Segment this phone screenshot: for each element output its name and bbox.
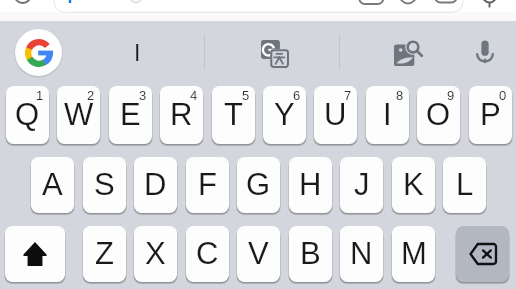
staticText: A (42, 167, 63, 202)
button[interactable]: Z (83, 226, 126, 284)
button[interactable]: Google (15, 29, 62, 76)
staticText: Y (274, 97, 295, 132)
button[interactable]: R (160, 86, 203, 146)
staticText: T (224, 97, 243, 132)
button[interactable]: S (83, 157, 126, 215)
button[interactable]: X (134, 226, 177, 284)
button[interactable]: Y (263, 86, 306, 146)
button[interactable]: D (134, 157, 177, 215)
staticText: P (480, 97, 501, 132)
button[interactable]: O (417, 86, 460, 146)
staticText: G (246, 167, 271, 202)
button[interactable]: B (289, 226, 332, 284)
button[interactable]: V (237, 226, 280, 284)
staticText: N (350, 236, 373, 271)
staticText: O (426, 97, 451, 132)
button[interactable]: L (443, 157, 486, 215)
staticText: I (134, 40, 141, 66)
staticText: J (354, 167, 370, 202)
staticText: Z (95, 236, 114, 271)
staticText: X (145, 236, 166, 271)
button[interactable]: I (366, 86, 409, 146)
button[interactable]: J (340, 157, 383, 215)
staticText: C (196, 236, 219, 271)
staticText: 6 (293, 88, 301, 103)
button[interactable]: I (70, 21, 204, 85)
staticText: 0 (499, 88, 507, 103)
staticText: 5 (242, 88, 250, 103)
staticText: B (300, 236, 321, 271)
button[interactable]: H (289, 157, 332, 215)
staticText: K (403, 167, 424, 202)
button[interactable]: C (186, 226, 229, 284)
staticText: L (456, 167, 474, 202)
button[interactable]: P (469, 86, 512, 146)
staticText: 2 (87, 88, 95, 103)
button[interactable]: F (186, 157, 229, 215)
staticText: V (248, 236, 269, 271)
staticText: M (401, 236, 427, 271)
staticText: 9 (447, 88, 455, 103)
button[interactable]: G (237, 157, 280, 215)
button[interactable]: Image search (374, 21, 440, 85)
staticText: F (198, 167, 217, 202)
staticText: 4 (190, 88, 198, 103)
button[interactable]: U (314, 86, 357, 146)
button[interactable]: T (212, 86, 255, 146)
button[interactable]: N (340, 226, 383, 284)
staticText: H (299, 167, 322, 202)
button[interactable]: M (392, 226, 435, 284)
button[interactable]: A (31, 157, 74, 215)
button[interactable]: K (392, 157, 435, 215)
staticText: Q (15, 97, 40, 132)
button[interactable]: W (57, 86, 100, 146)
staticText: D (144, 167, 167, 202)
staticText: U (324, 97, 347, 132)
staticText: 8 (396, 88, 404, 103)
staticText: 7 (344, 88, 352, 103)
button[interactable]: Voice input (455, 21, 515, 85)
staticText: I (383, 97, 392, 132)
staticText: 1 (36, 88, 44, 103)
button[interactable]: E (109, 86, 152, 146)
staticText: E (120, 97, 141, 132)
button[interactable]: Translate (240, 21, 308, 85)
button[interactable]: Shift (5, 226, 65, 284)
button[interactable]: Q (6, 86, 49, 146)
staticText: 3 (139, 88, 147, 103)
button[interactable]: Backspace (456, 226, 509, 284)
staticText: W (64, 97, 94, 132)
staticText: S (94, 167, 115, 202)
staticText: R (170, 97, 193, 132)
